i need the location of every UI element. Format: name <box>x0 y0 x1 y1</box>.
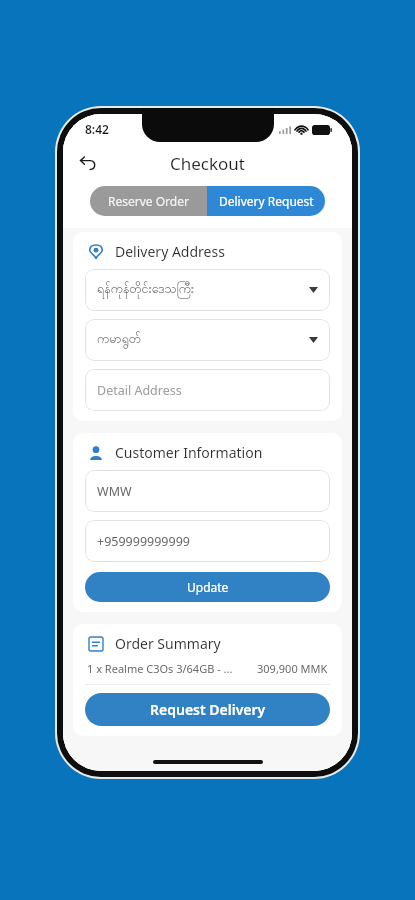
staticText: 1 x Realme C3Os 3/64GB - ... <box>87 661 233 676</box>
staticText: Update <box>187 579 229 595</box>
button[interactable]: ရန်ကုန်တိုင်းဒေသကြီး <box>85 269 330 311</box>
staticText: Request Delivery <box>150 700 266 719</box>
button[interactable]: ကမာရွတ် <box>85 319 330 361</box>
staticText: Checkout <box>170 152 246 175</box>
button[interactable]: Delivery Request <box>207 186 325 216</box>
staticText: Customer Information <box>115 443 263 462</box>
staticText: 309,900 MMK <box>257 661 328 676</box>
staticText: Delivery Address <box>115 242 225 261</box>
button[interactable]: Request Delivery <box>85 693 330 726</box>
button[interactable]: Back <box>71 146 105 180</box>
staticText: Order Summary <box>115 634 221 653</box>
staticText: Reserve Order <box>108 193 189 209</box>
button[interactable]: +959999999999 <box>85 520 330 562</box>
staticText: ရန်ကုန်တိုင်းဒေသကြီး <box>97 281 195 299</box>
staticText: 8:42 <box>85 121 109 137</box>
staticText: WMW <box>97 483 132 500</box>
button[interactable]: Detail Address <box>85 369 330 411</box>
button[interactable]: Reserve Order <box>90 186 207 216</box>
button[interactable]: Update <box>85 572 330 602</box>
staticText: ကမာရွတ် <box>97 331 141 349</box>
staticText: +959999999999 <box>97 533 190 550</box>
staticText: Delivery Request <box>219 193 314 209</box>
button[interactable]: WMW <box>85 470 330 512</box>
staticText: Detail Address <box>97 382 182 399</box>
